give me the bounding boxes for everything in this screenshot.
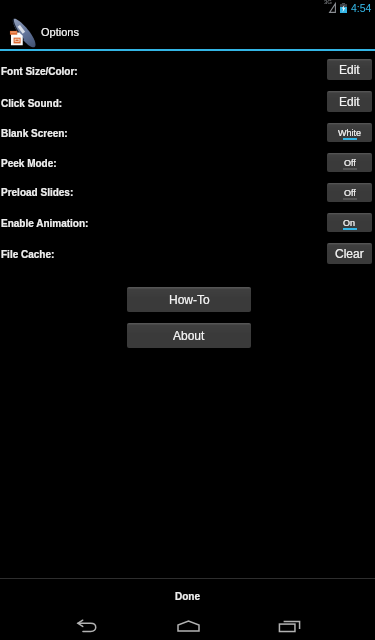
button[interactable]: Font Size/Color:: [0, 54, 375, 85]
button[interactable]: Preload Slides:: [0, 178, 375, 207]
staticText: How-To: [169, 293, 210, 306]
button[interactable]: Recent apps: [259, 610, 319, 640]
staticText: About: [173, 329, 205, 342]
staticText: On: [343, 218, 356, 228]
button[interactable]: How-To: [127, 287, 251, 312]
staticText: Peek Mode:: [1, 158, 57, 169]
staticText: Preload Slides:: [1, 187, 74, 198]
button[interactable]: White: [327, 123, 372, 142]
button[interactable]: Edit: [327, 91, 372, 112]
button[interactable]: File Cache:: [0, 238, 375, 269]
button[interactable]: Off: [327, 153, 372, 172]
button[interactable]: Edit: [327, 59, 372, 80]
staticText: Clear: [335, 247, 364, 260]
staticText: 4:54: [351, 2, 372, 14]
staticText: Done: [175, 591, 200, 602]
button[interactable]: On: [327, 213, 372, 232]
button[interactable]: Enable Animation:: [0, 208, 375, 237]
button[interactable]: Clear: [327, 243, 372, 264]
staticText: Off: [344, 188, 356, 198]
staticText: White: [338, 128, 362, 138]
staticText: Off: [344, 158, 356, 168]
staticText: Options: [41, 26, 79, 38]
button[interactable]: Done: [0, 580, 375, 608]
button[interactable]: Click Sound:: [0, 86, 375, 117]
button[interactable]: Back: [56, 610, 116, 640]
staticText: File Cache:: [1, 249, 55, 260]
button[interactable]: Peek Mode:: [0, 148, 375, 177]
button[interactable]: About: [127, 323, 251, 348]
staticText: Enable Animation:: [1, 218, 89, 229]
button[interactable]: Home: [158, 610, 218, 640]
button[interactable]: Off: [327, 183, 372, 202]
staticText: Edit: [339, 95, 360, 108]
staticText: Font Size/Color:: [1, 66, 78, 77]
staticText: Click Sound:: [1, 98, 63, 109]
staticText: Blank Screen:: [1, 128, 68, 139]
staticText: 3G: [324, 0, 333, 6]
button[interactable]: Blank Screen:: [0, 118, 375, 147]
staticText: Edit: [339, 63, 360, 76]
